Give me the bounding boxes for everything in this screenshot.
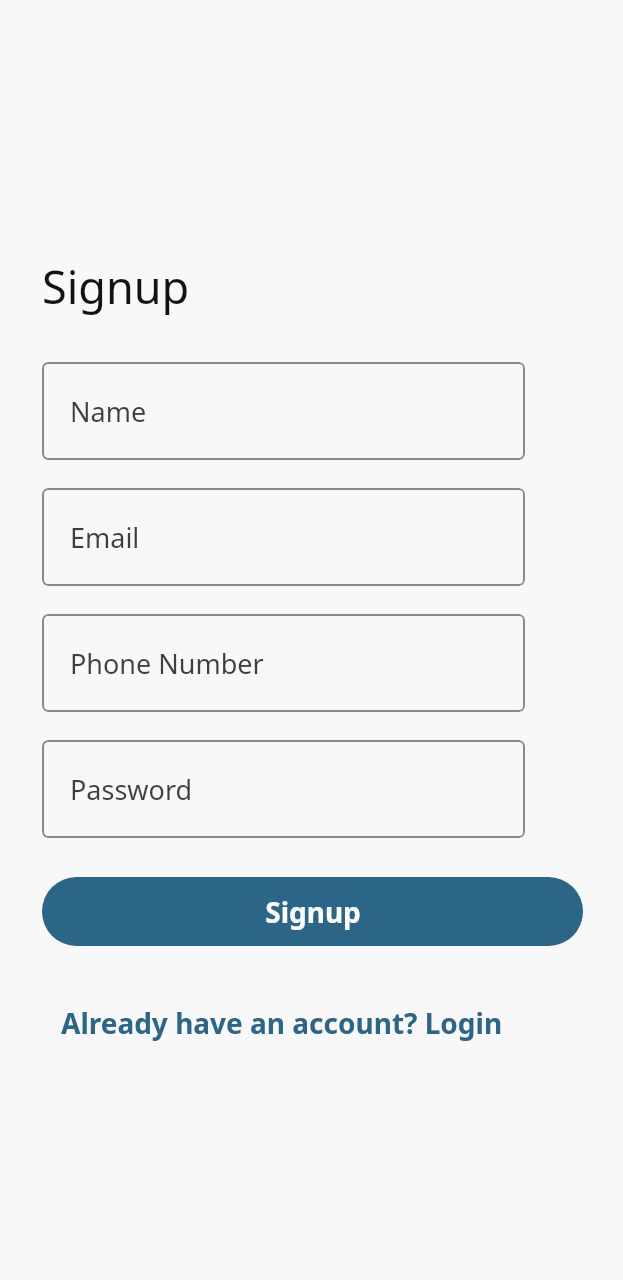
button[interactable]: Email <box>42 488 525 586</box>
staticText: Signup <box>42 256 190 317</box>
button[interactable]: Already have an account? Login <box>61 1004 503 1042</box>
button[interactable]: Name <box>42 362 525 460</box>
staticText: Phone Number <box>70 645 264 682</box>
staticText: Email <box>70 519 140 556</box>
staticText: Signup <box>265 893 361 931</box>
button[interactable]: Phone Number <box>42 614 525 712</box>
button[interactable]: Password <box>42 740 525 838</box>
button[interactable]: Signup <box>42 877 583 946</box>
staticText: Password <box>70 771 193 808</box>
staticText: Name <box>70 393 147 430</box>
staticText: Already have an account? Login <box>61 1004 503 1042</box>
